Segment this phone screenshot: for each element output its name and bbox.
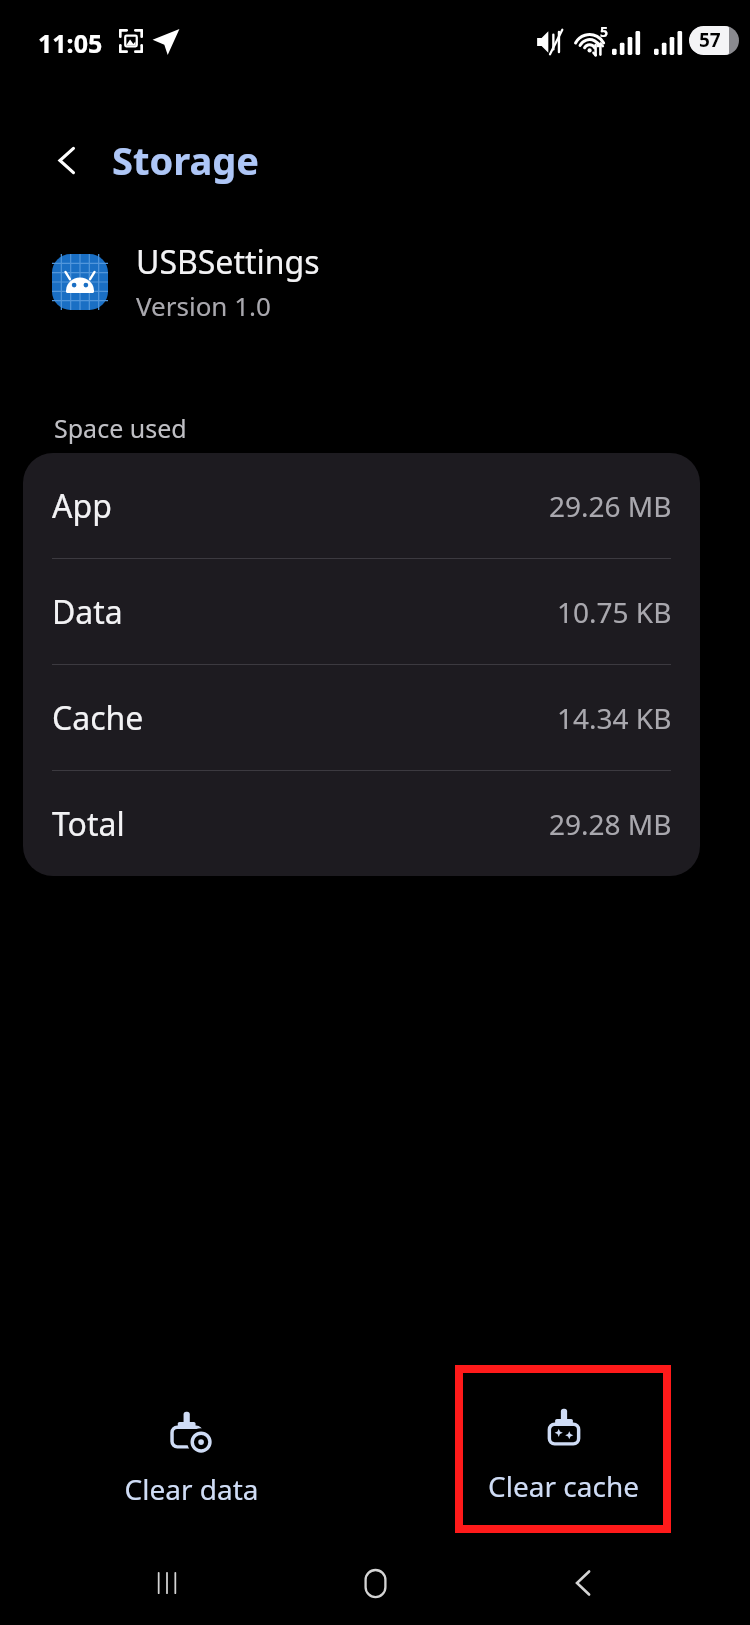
button[interactable]: Back xyxy=(542,1541,626,1625)
button[interactable]: Data xyxy=(23,559,700,664)
button[interactable]: Home xyxy=(333,1541,417,1625)
staticText: App xyxy=(52,484,112,528)
staticText: 5 xyxy=(600,22,609,41)
staticText: Total xyxy=(52,802,125,846)
button[interactable]: Navigate up xyxy=(35,128,99,192)
staticText: 14.34 KB xyxy=(557,699,672,737)
staticText: 29.28 MB xyxy=(549,805,672,843)
staticText: 57 xyxy=(699,27,721,53)
button[interactable]: Clear data xyxy=(88,1408,294,1508)
button[interactable]: App xyxy=(23,453,700,558)
staticText: Space used xyxy=(54,411,187,445)
staticText: USBSettings xyxy=(136,240,320,284)
staticText: 11:05 xyxy=(38,26,103,60)
staticText: Data xyxy=(52,590,123,634)
staticText: 10.75 KB xyxy=(557,593,672,631)
staticText: Cache xyxy=(52,696,144,740)
button[interactable]: Recent apps xyxy=(125,1541,209,1625)
button[interactable]: Total xyxy=(23,771,700,876)
staticText: Clear cache xyxy=(488,1467,639,1505)
button[interactable]: Cache xyxy=(23,665,700,770)
staticText: Storage xyxy=(112,134,259,186)
button[interactable]: Clear cache xyxy=(488,1405,639,1505)
staticText: 29.26 MB xyxy=(549,487,672,525)
staticText: Version 1.0 xyxy=(136,288,271,323)
staticText: Clear data xyxy=(124,1470,259,1508)
